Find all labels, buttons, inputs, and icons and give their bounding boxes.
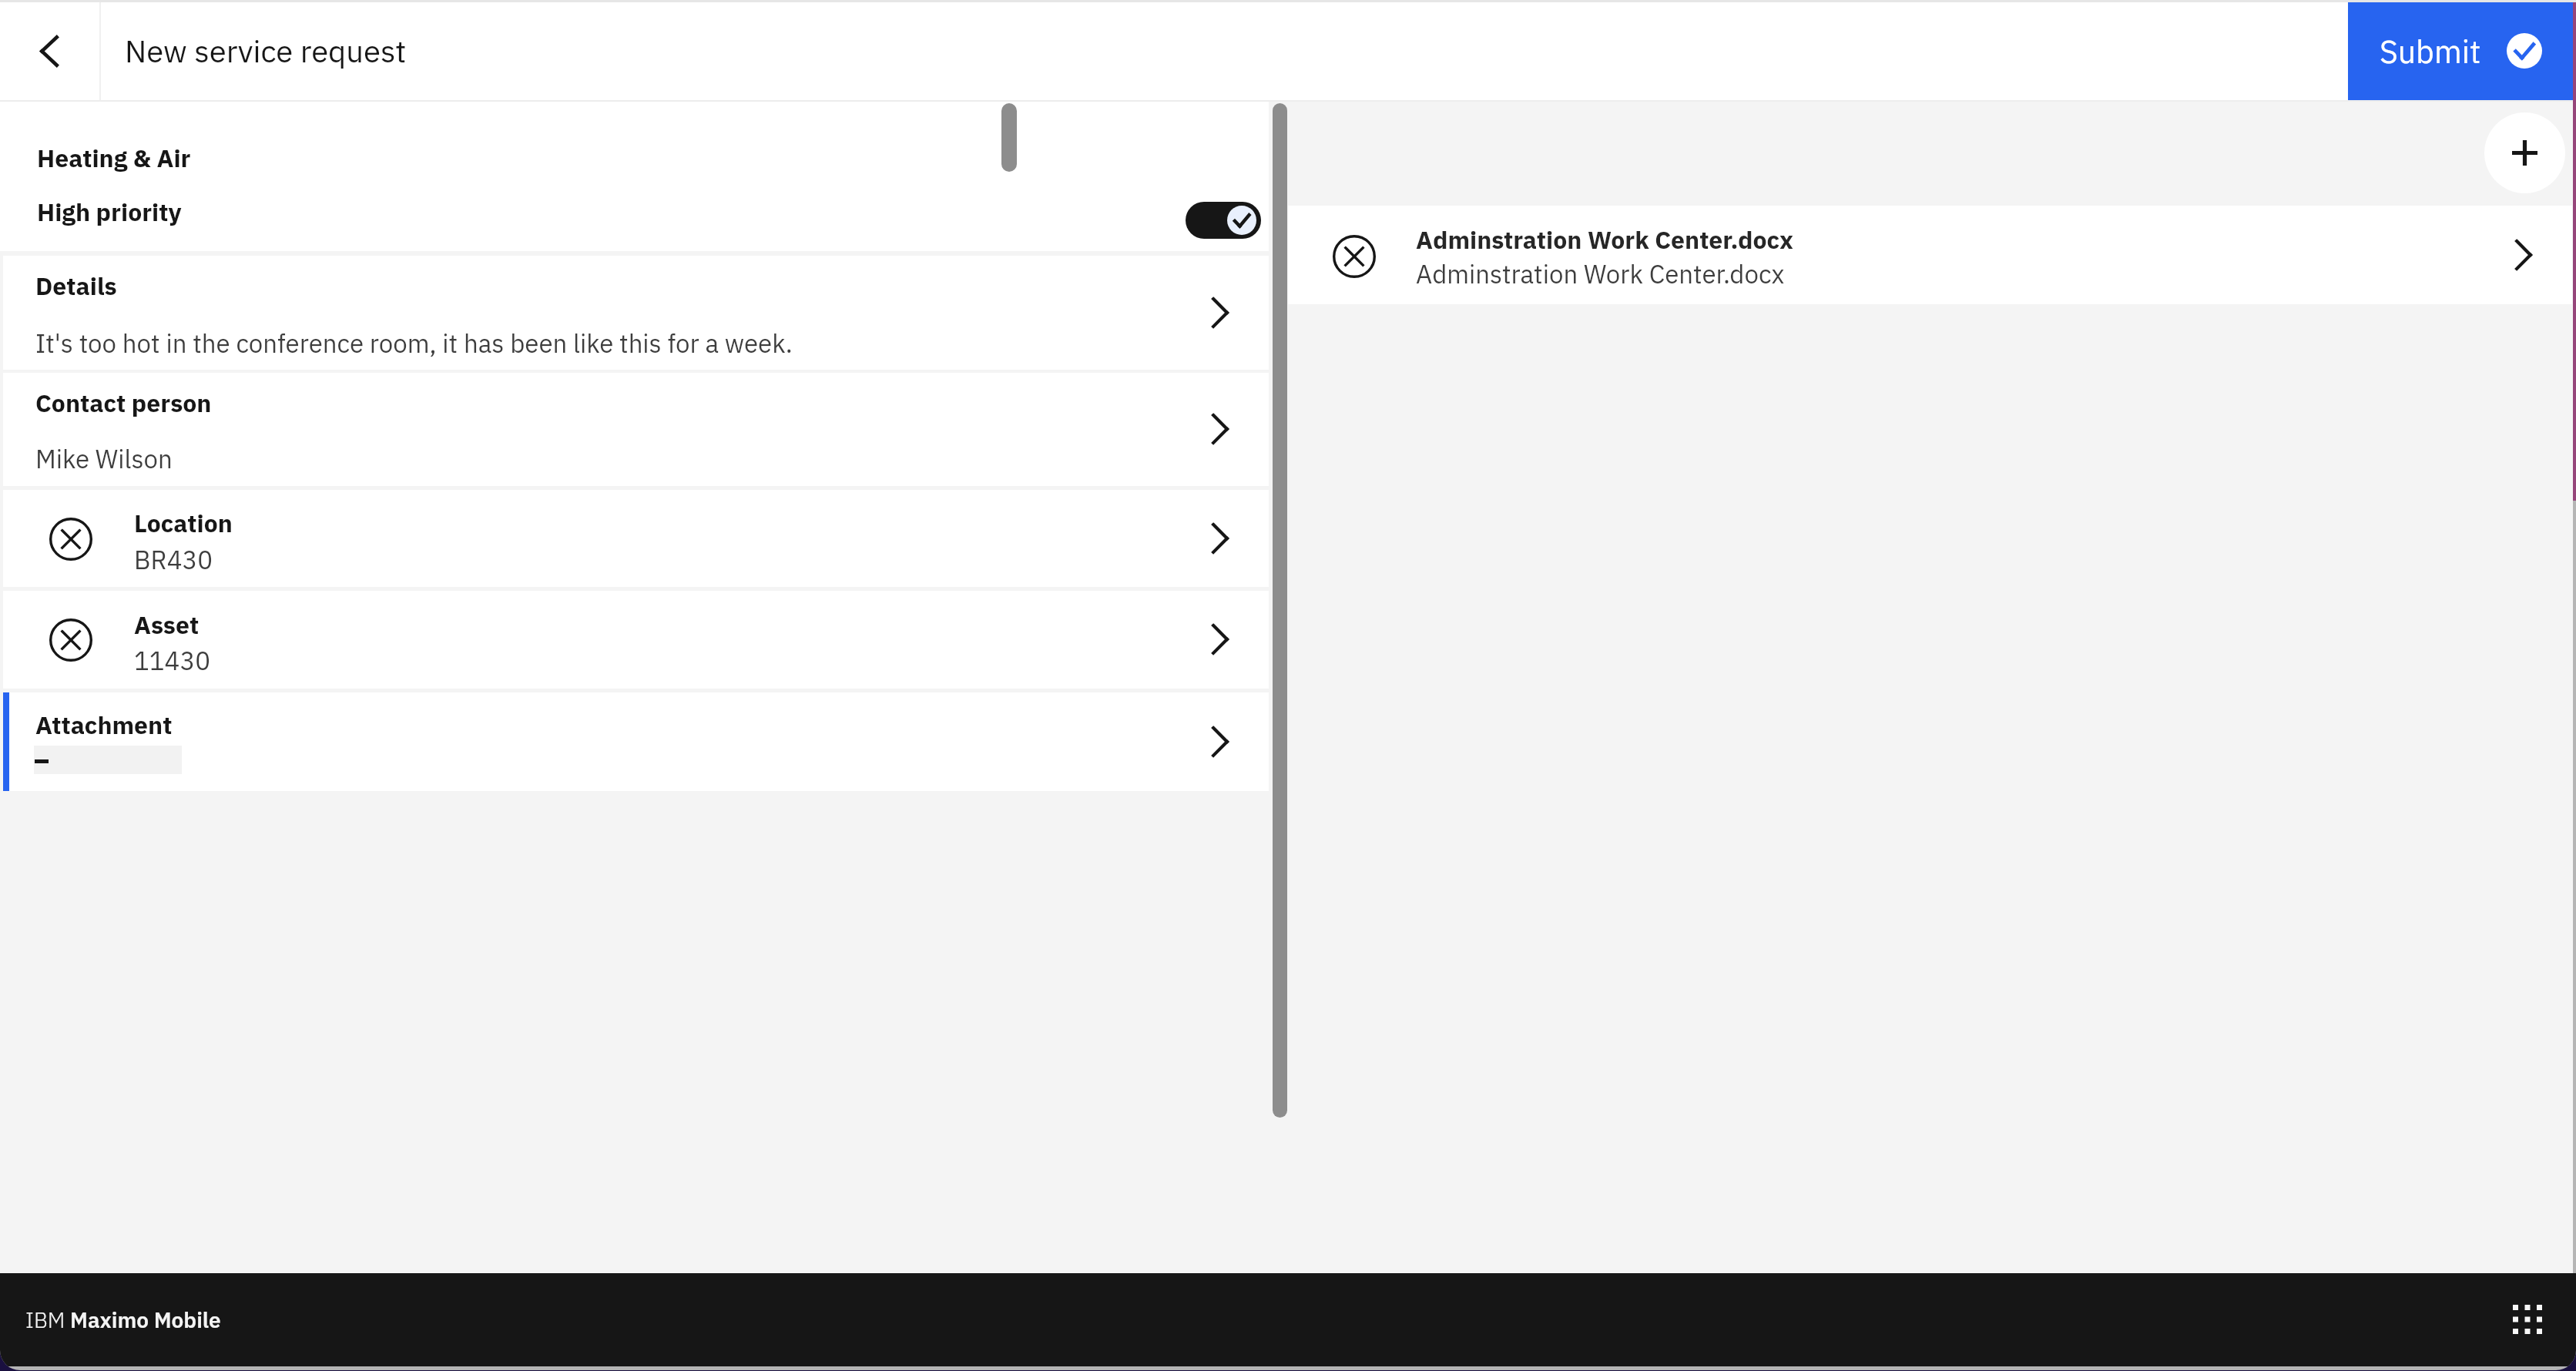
button[interactable]: Details bbox=[0, 256, 1269, 370]
button[interactable]: Contact person bbox=[0, 373, 1269, 486]
button[interactable]: Location bbox=[0, 490, 1269, 587]
button[interactable]: Asset bbox=[0, 591, 1269, 689]
staticText: Heating & Air bbox=[37, 142, 191, 174]
staticText: Details bbox=[35, 270, 117, 302]
staticText: High priority bbox=[37, 196, 182, 228]
button[interactable]: High priority toggle bbox=[1186, 202, 1261, 239]
staticText: Submit bbox=[2380, 31, 2481, 72]
staticText: Maximo Mobile bbox=[70, 1306, 221, 1333]
staticText: New service request bbox=[125, 31, 407, 71]
staticText: Contact person bbox=[35, 387, 212, 419]
button[interactable]: Adminstration Work Center.docx bbox=[1288, 206, 2572, 304]
staticText: Location bbox=[134, 507, 233, 539]
staticText: Mike Wilson bbox=[35, 442, 173, 475]
button[interactable]: Add attachment bbox=[2484, 112, 2565, 193]
button[interactable]: Attachment bbox=[0, 692, 1269, 791]
staticText: Asset bbox=[134, 608, 200, 641]
button[interactable]: Submit bbox=[2348, 0, 2576, 100]
staticText: Adminstration Work Center.docx bbox=[1416, 257, 1785, 290]
button[interactable]: App switcher bbox=[2500, 1292, 2555, 1347]
button[interactable]: Back bbox=[0, 0, 99, 100]
button[interactable]: New service request bbox=[101, 0, 2348, 100]
staticText: It's too hot in the conference room, it … bbox=[35, 327, 793, 360]
staticText: Attachment bbox=[35, 709, 173, 741]
staticText: 11430 bbox=[134, 644, 211, 677]
staticText: BR430 bbox=[134, 543, 213, 576]
staticText: IBM bbox=[25, 1306, 70, 1333]
staticText: Adminstration Work Center.docx bbox=[1416, 223, 1794, 256]
